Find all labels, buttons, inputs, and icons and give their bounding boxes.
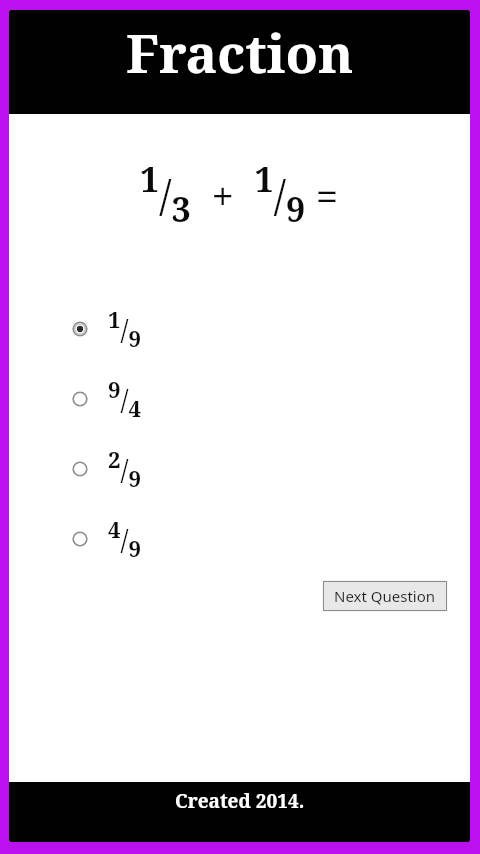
staticText: 9/4 — [108, 374, 142, 424]
staticText: 1/3 + 1/9 = — [140, 156, 339, 232]
staticText: 2/9 — [108, 444, 142, 494]
staticText: Next Question — [334, 586, 436, 606]
staticText: Fraction — [126, 16, 354, 88]
staticText: 1/9 — [108, 304, 142, 354]
button[interactable]: 4/9 — [9, 504, 470, 574]
staticText: 4/9 — [108, 514, 142, 564]
button[interactable]: Next Question — [324, 582, 446, 610]
button[interactable]: 9/4 — [9, 364, 470, 434]
button[interactable]: 2/9 — [9, 434, 470, 504]
button[interactable]: 1/9 — [9, 294, 470, 364]
staticText: Created 2014. — [175, 788, 305, 814]
